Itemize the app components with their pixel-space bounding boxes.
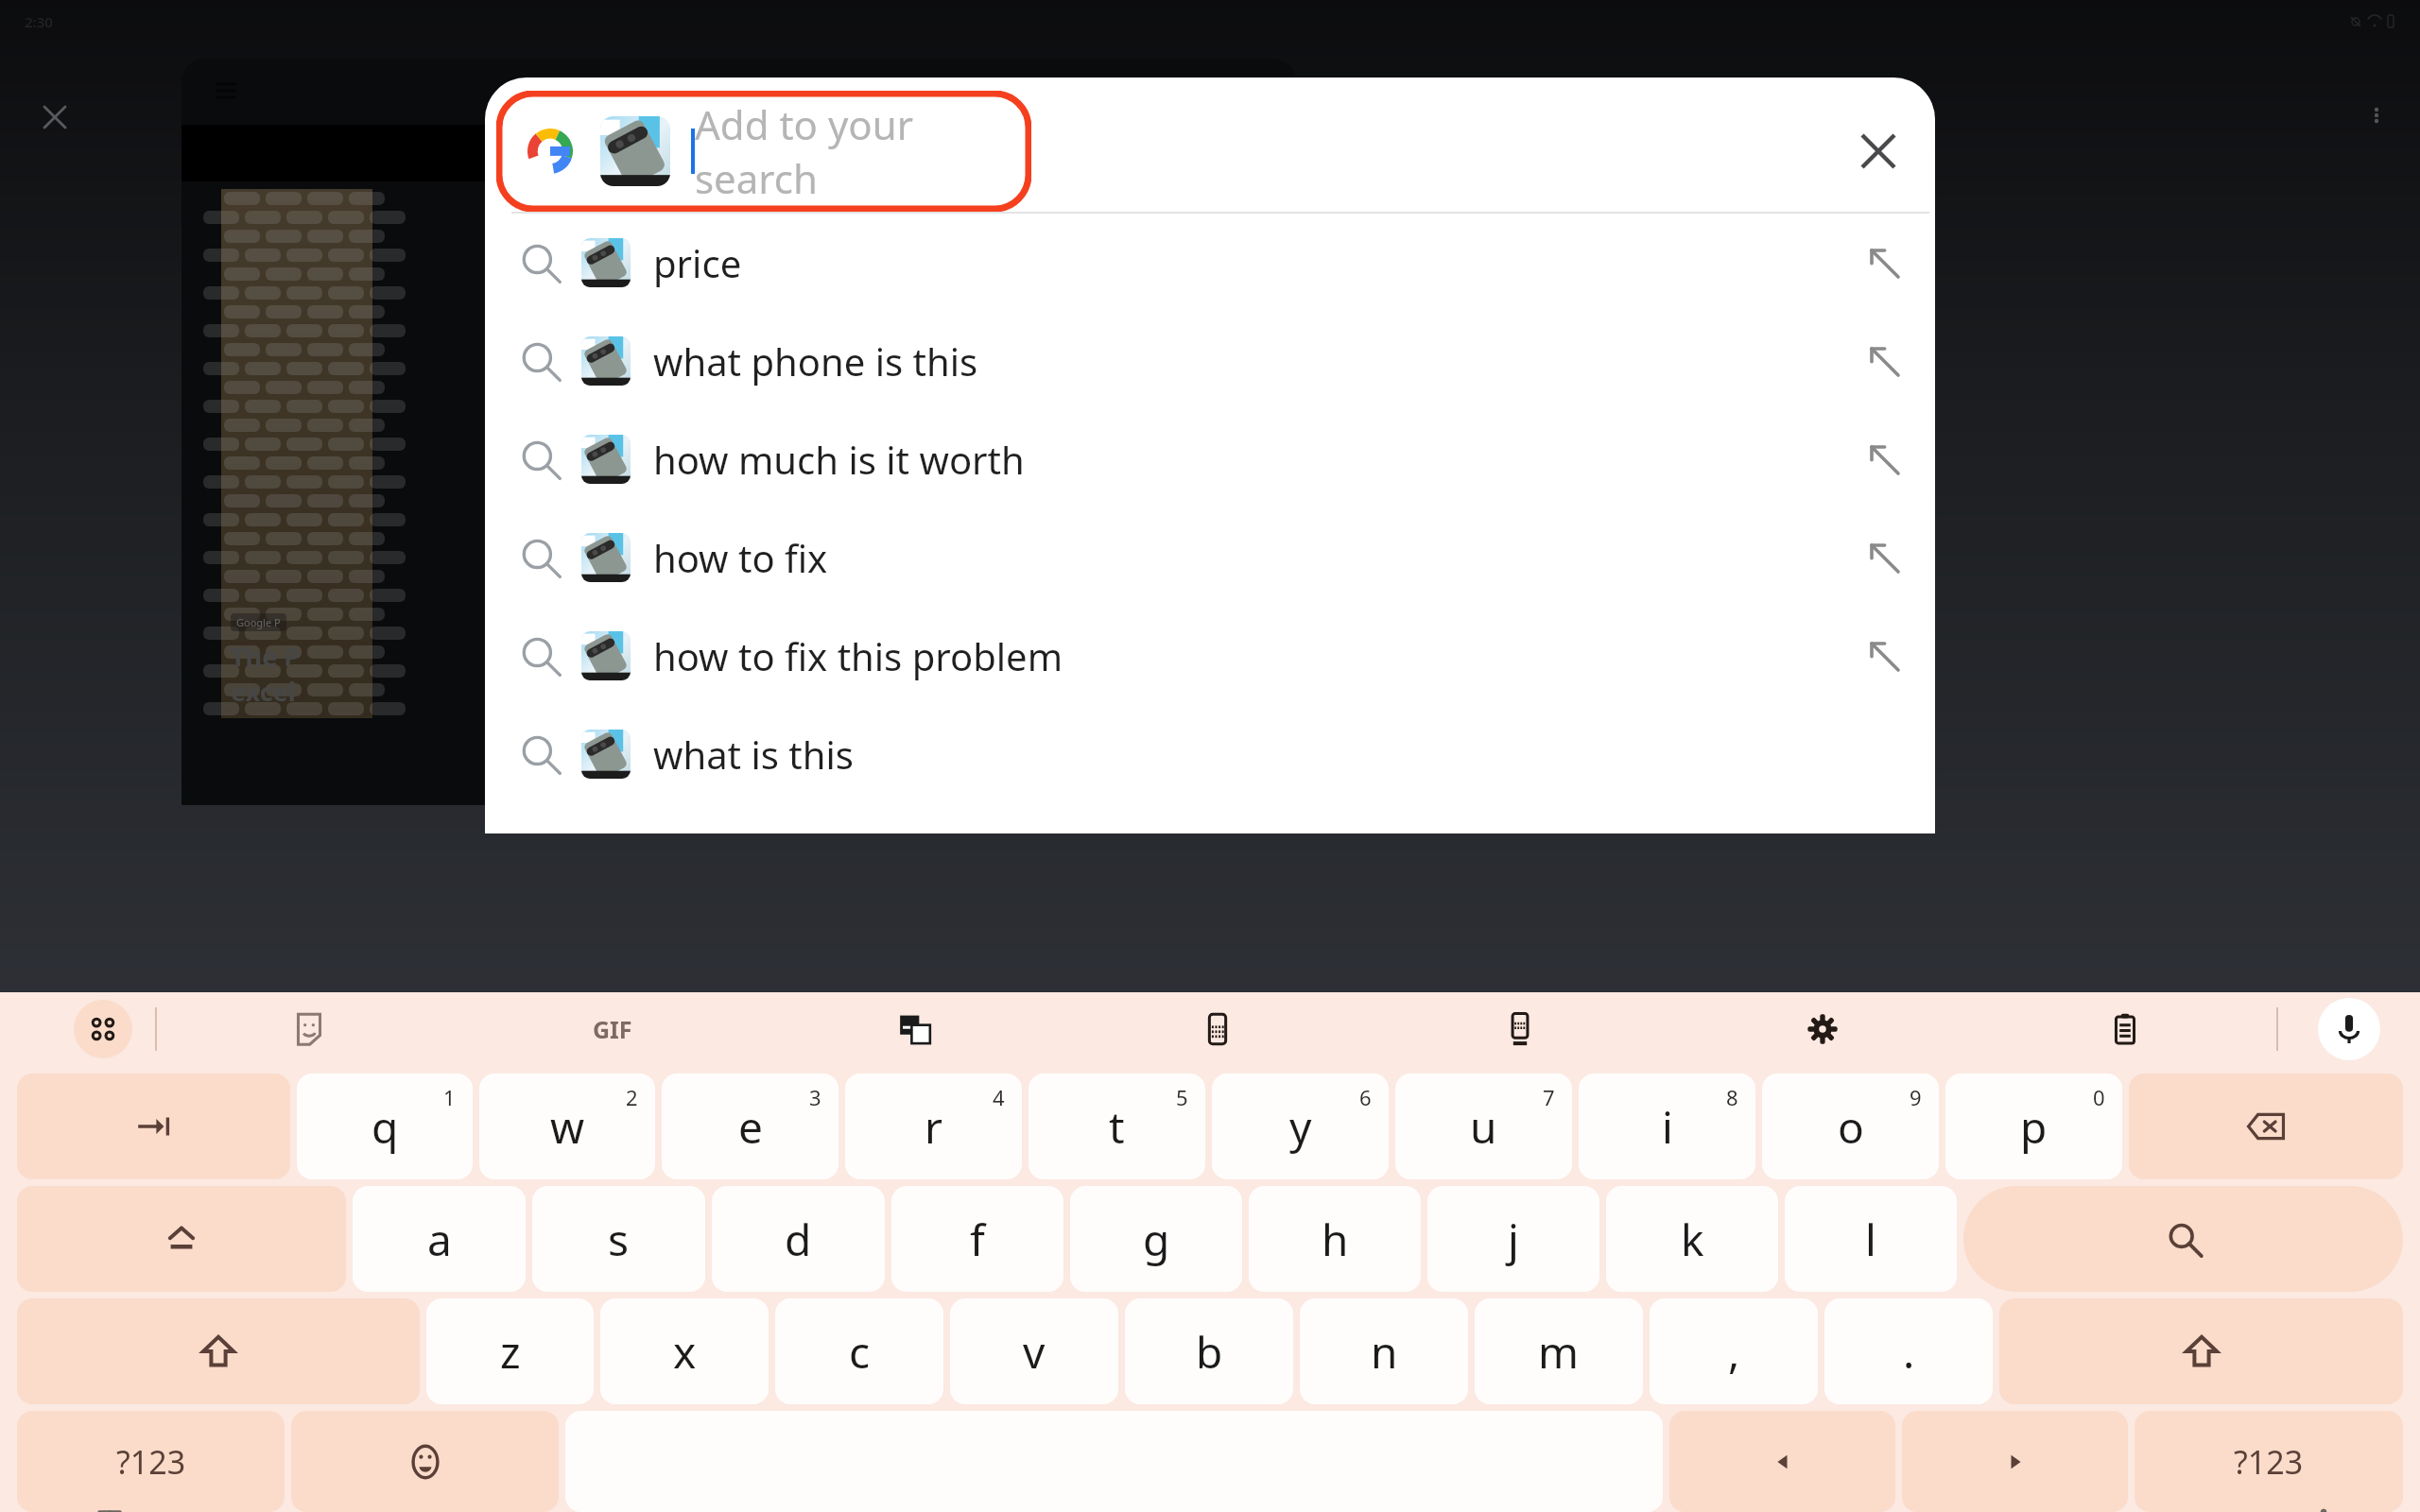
staticText: GIF — [593, 1013, 632, 1045]
button[interactable]: Caps lock — [17, 1186, 346, 1292]
button[interactable]: z — [426, 1298, 594, 1404]
button[interactable]: k — [1606, 1186, 1778, 1292]
staticText: what phone is this — [653, 335, 978, 387]
button[interactable]: how to fix — [485, 508, 1935, 607]
button[interactable]: what phone is this — [485, 312, 1935, 410]
staticText: 4 — [993, 1083, 1005, 1111]
button[interactable]: Move cursor right — [1902, 1411, 2128, 1512]
staticText: z — [500, 1322, 521, 1382]
button[interactable]: Emoji — [291, 1411, 559, 1512]
button[interactable]: , — [1650, 1298, 1818, 1404]
button[interactable]: Close search — [1835, 108, 1922, 195]
button[interactable]: Settings — [1671, 992, 1974, 1066]
staticText: y — [1289, 1097, 1312, 1157]
staticText: 0 — [2093, 1083, 2105, 1111]
button[interactable]: Translate — [764, 992, 1066, 1066]
button[interactable]: Insert suggestion — [1856, 333, 1912, 389]
staticText: i — [1662, 1097, 1673, 1157]
button[interactable]: Insert suggestion — [1856, 529, 1912, 586]
button[interactable]: Insert suggestion — [1856, 627, 1912, 684]
button[interactable]: Insert suggestion — [1856, 431, 1912, 488]
staticText: t — [1109, 1097, 1125, 1157]
staticText: c — [849, 1322, 871, 1382]
staticText: j — [1508, 1210, 1519, 1269]
staticText: o — [1838, 1097, 1864, 1157]
staticText: k — [1681, 1210, 1704, 1269]
button[interactable]: GIF — [460, 992, 764, 1066]
button[interactable]: j — [1427, 1186, 1599, 1292]
button[interactable]: a — [353, 1186, 526, 1292]
staticText: how much is it worth — [653, 434, 1025, 485]
staticText: . — [1903, 1322, 1915, 1382]
staticText: ?123 — [116, 1440, 186, 1484]
staticText: what is this — [653, 729, 854, 780]
button[interactable]: e — [662, 1074, 838, 1179]
button[interactable]: Voice input — [2318, 998, 2380, 1060]
button[interactable]: s — [532, 1186, 705, 1292]
button[interactable]: g — [1070, 1186, 1242, 1292]
button[interactable]: Floating keyboard — [1369, 992, 1671, 1066]
button[interactable]: t — [1028, 1074, 1205, 1179]
button[interactable]: f — [891, 1186, 1063, 1292]
button[interactable]: m — [1475, 1298, 1643, 1404]
button[interactable]: x — [600, 1298, 769, 1404]
button[interactable]: . — [1824, 1298, 1993, 1404]
staticText: e — [738, 1097, 763, 1157]
staticText: Google P — [236, 615, 281, 629]
button[interactable]: ?123 — [17, 1411, 285, 1512]
button[interactable]: u — [1395, 1074, 1572, 1179]
button[interactable]: Stickers — [157, 992, 460, 1066]
button[interactable]: ?123 — [2135, 1411, 2403, 1512]
button[interactable]: q — [297, 1074, 473, 1179]
button[interactable]: h — [1249, 1186, 1421, 1292]
button[interactable]: Backspace — [2129, 1074, 2403, 1179]
staticText: 9 — [1910, 1083, 1922, 1111]
button[interactable]: d — [712, 1186, 885, 1292]
staticText: 2 — [626, 1083, 638, 1111]
button[interactable]: v — [950, 1298, 1118, 1404]
staticText: 3 — [809, 1083, 821, 1111]
button[interactable]: More options — [2354, 93, 2399, 138]
staticText: 1 — [443, 1083, 456, 1111]
button[interactable]: w — [479, 1074, 655, 1179]
button[interactable]: Clipboard — [1974, 992, 2276, 1066]
staticText: q — [372, 1097, 399, 1157]
button[interactable]: i — [1579, 1074, 1755, 1179]
button[interactable]: b — [1125, 1298, 1293, 1404]
button[interactable]: Move cursor left — [1669, 1411, 1895, 1512]
button[interactable]: Close — [32, 94, 78, 140]
button[interactable]: what is this — [485, 705, 1935, 803]
button[interactable]: p — [1945, 1074, 2122, 1179]
button[interactable]: r — [845, 1074, 1022, 1179]
staticText: s — [608, 1210, 630, 1269]
staticText: w — [550, 1097, 585, 1157]
button[interactable]: Insert suggestion — [1856, 234, 1912, 291]
button[interactable]: Add to your search — [496, 91, 1031, 212]
button[interactable]: Search — [1963, 1186, 2403, 1292]
button[interactable]: l — [1785, 1186, 1957, 1292]
staticText: u — [1470, 1097, 1497, 1157]
staticText: , — [1728, 1322, 1740, 1382]
staticText: m — [1538, 1322, 1580, 1382]
staticText: how to fix — [653, 532, 828, 583]
button[interactable]: c — [775, 1298, 943, 1404]
button[interactable]: One-handed mode — [1066, 992, 1369, 1066]
button[interactable]: how much is it worth — [485, 410, 1935, 508]
button[interactable]: Toolbox — [74, 1000, 132, 1058]
staticText: v — [1023, 1322, 1046, 1382]
staticText: x — [673, 1322, 697, 1382]
button[interactable]: price — [485, 214, 1935, 312]
button[interactable]: Shift — [17, 1298, 420, 1404]
button[interactable]: how to fix this problem — [485, 607, 1935, 705]
button[interactable]: Shift — [1999, 1298, 2403, 1404]
button[interactable]: n — [1300, 1298, 1468, 1404]
staticText: l — [1865, 1210, 1876, 1269]
button[interactable]: Tab — [17, 1074, 290, 1179]
staticText: The P — [231, 639, 301, 674]
button[interactable]: y — [1212, 1074, 1389, 1179]
button[interactable]: o — [1762, 1074, 1939, 1179]
